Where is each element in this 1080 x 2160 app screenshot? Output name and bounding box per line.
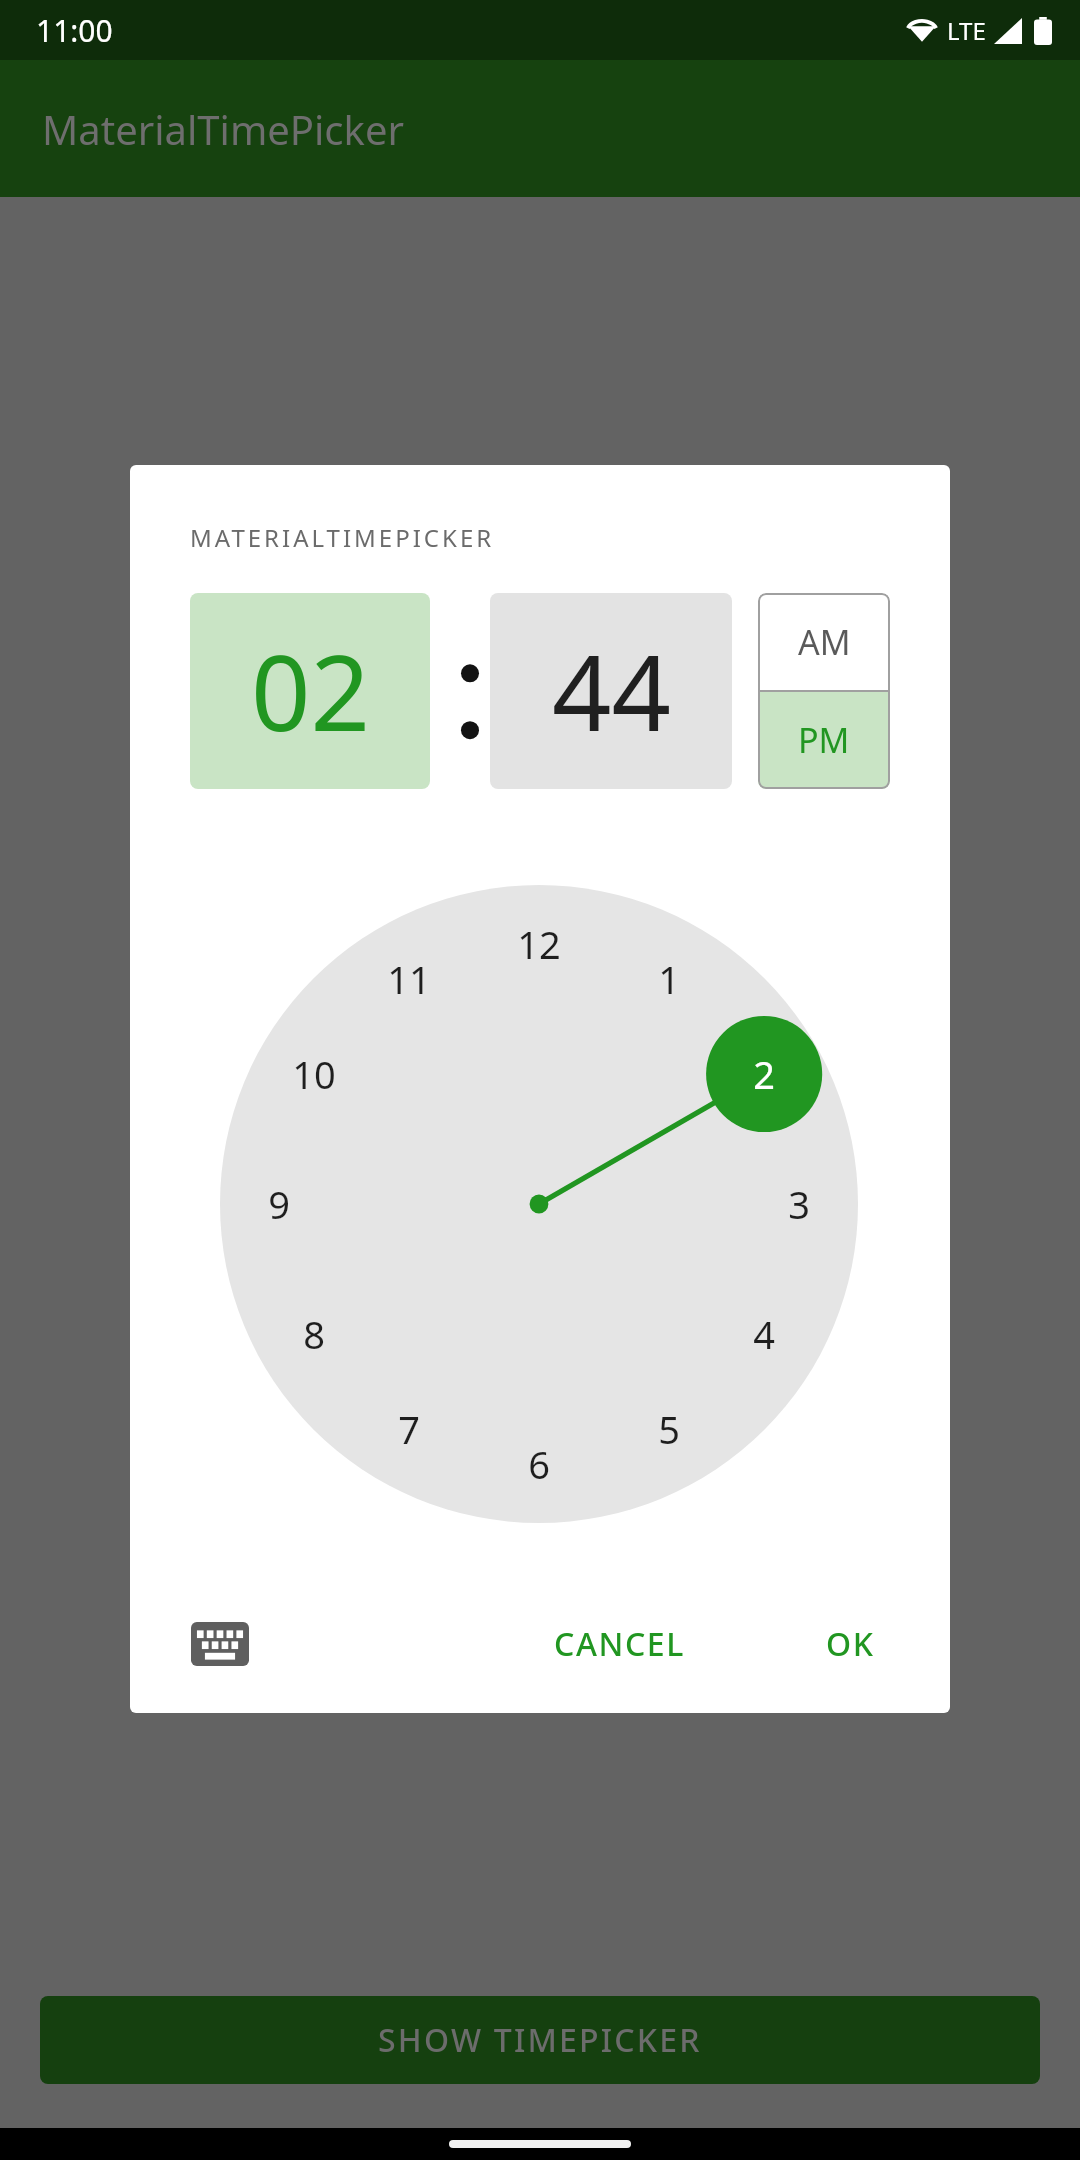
staticText: 9 (268, 1178, 290, 1230)
staticText: MATERIALTIMEPICKER (190, 521, 495, 554)
staticText: 7 (398, 1403, 420, 1455)
button[interactable]: CANCEL (530, 1607, 709, 1681)
staticText: AM (798, 619, 851, 665)
staticText: 44 (552, 620, 671, 762)
staticText: 3 (788, 1178, 810, 1230)
staticText: 6 (528, 1438, 550, 1490)
staticText: 11:00 (36, 10, 113, 51)
staticText: 8 (303, 1308, 325, 1360)
staticText: 02 (251, 620, 370, 762)
staticText: 12 (517, 918, 561, 970)
staticText: SHOW TIMEPICKER (378, 2018, 702, 2062)
staticText: PM (798, 717, 850, 763)
button[interactable]: PM (758, 691, 890, 789)
button[interactable]: 02 (190, 593, 430, 789)
staticText: 1 (658, 953, 680, 1005)
staticText: CANCEL (554, 1622, 685, 1666)
staticText: MaterialTimePicker (42, 102, 404, 156)
button[interactable]: AM (758, 593, 890, 691)
button[interactable]: OK (802, 1607, 899, 1681)
staticText: OK (826, 1622, 875, 1666)
staticText: 10 (292, 1048, 336, 1100)
button[interactable]: 1 (220, 885, 858, 1523)
staticText: 2 (753, 1048, 775, 1100)
button[interactable]: Switch to text input mode (182, 1613, 258, 1675)
staticText: 11 (387, 953, 431, 1005)
button[interactable]: SHOW TIMEPICKER (40, 1996, 1040, 2084)
staticText: 5 (658, 1403, 680, 1455)
staticText: 4 (753, 1308, 775, 1360)
staticText: LTE (947, 14, 986, 47)
button[interactable]: 44 (490, 593, 732, 789)
